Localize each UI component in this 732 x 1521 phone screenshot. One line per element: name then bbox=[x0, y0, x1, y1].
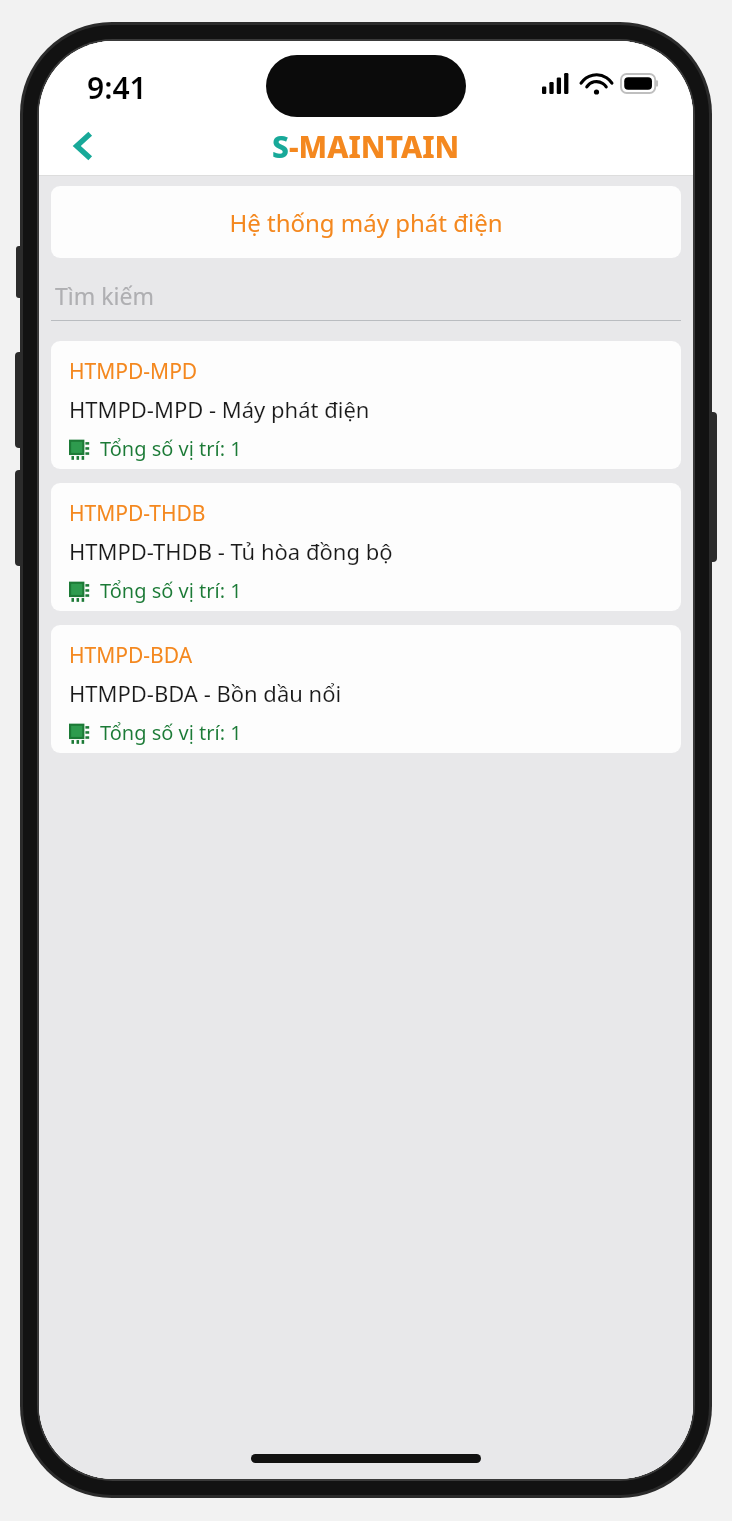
button[interactable]: Hệ thống máy phát điện bbox=[51, 186, 681, 258]
staticText: -MAINTAIN bbox=[289, 126, 460, 167]
staticText: Tìm kiếm bbox=[55, 280, 154, 311]
button[interactable]: HTMPD-MPD bbox=[51, 341, 681, 469]
staticText: HTMPD-MPD bbox=[69, 357, 198, 386]
staticText: HTMPD-BDA bbox=[69, 641, 193, 670]
staticText: Tổng số vị trí: 1 bbox=[100, 577, 242, 604]
staticText: S bbox=[272, 126, 289, 167]
button[interactable]: HTMPD-THDB bbox=[51, 483, 681, 611]
staticText: HTMPD-THDB - Tủ hòa đồng bộ bbox=[69, 536, 393, 566]
button[interactable]: HTMPD-BDA bbox=[51, 625, 681, 753]
staticText: Hệ thống máy phát điện bbox=[229, 206, 503, 239]
staticText: Tổng số vị trí: 1 bbox=[100, 435, 242, 462]
staticText: 9:41 bbox=[87, 67, 147, 108]
staticText: HTMPD-BDA - Bồn dầu nổi bbox=[69, 678, 342, 708]
staticText: Tổng số vị trí: 1 bbox=[100, 719, 242, 746]
staticText: HTMPD-THDB bbox=[69, 499, 206, 528]
button[interactable]: Back bbox=[55, 118, 111, 174]
staticText: HTMPD-MPD - Máy phát điện bbox=[69, 394, 370, 424]
button[interactable]: Tìm kiếm bbox=[51, 276, 681, 321]
